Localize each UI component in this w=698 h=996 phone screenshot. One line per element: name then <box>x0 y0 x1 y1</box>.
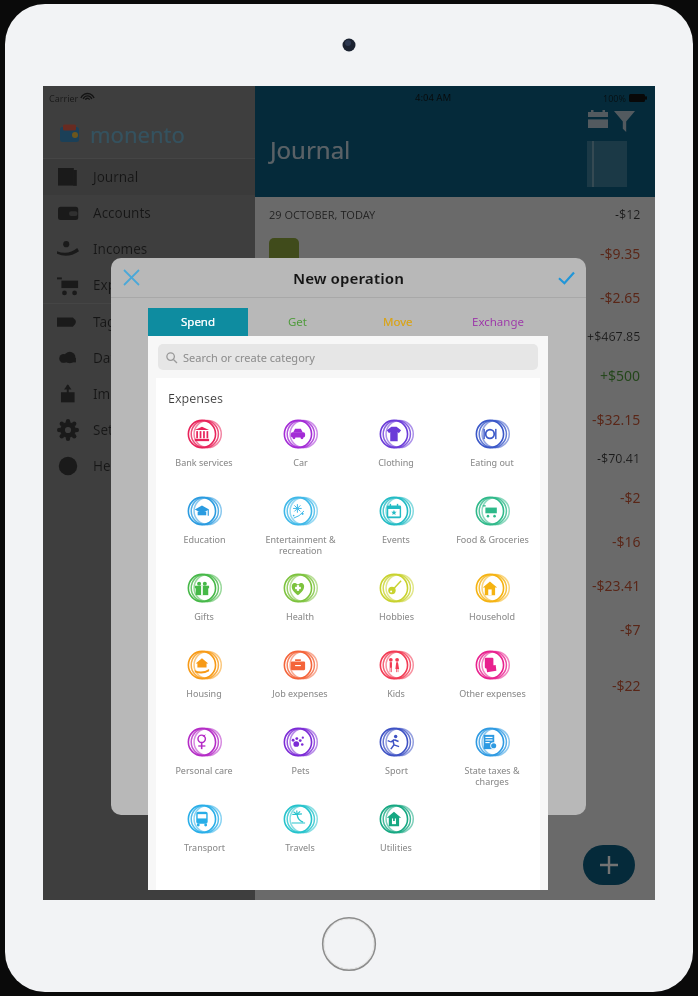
button[interactable]: Help <box>43 448 255 484</box>
staticText: Clothing <box>378 456 414 468</box>
button[interactable]: Journal <box>43 159 255 195</box>
staticText: -$12 <box>615 206 641 223</box>
staticText: monento <box>90 119 185 149</box>
button[interactable]: Household <box>444 565 540 642</box>
button[interactable]: Job expenses <box>252 642 348 719</box>
button[interactable]: -$2 <box>263 475 647 519</box>
button[interactable]: Confirm <box>546 258 586 297</box>
staticText: Expenses <box>168 390 224 407</box>
button[interactable]: Accounts <box>43 195 255 231</box>
staticText: -$2 <box>620 488 641 507</box>
staticText: Spend <box>181 314 216 330</box>
staticText: -$7 <box>620 620 641 639</box>
staticText: Household <box>469 610 515 622</box>
staticText: Move <box>383 314 413 330</box>
button[interactable]: Filter <box>614 111 635 132</box>
button[interactable]: Events <box>348 488 444 565</box>
button[interactable]: Close <box>111 258 151 297</box>
button[interactable]: Pets <box>252 719 348 796</box>
staticText: -$16 <box>612 532 641 551</box>
button[interactable]: -$2.65 <box>263 275 647 319</box>
button[interactable]: Search or create category <box>158 344 538 370</box>
button[interactable]: Sport <box>348 719 444 796</box>
staticText: -$22 <box>612 676 641 695</box>
button[interactable]: Eating out <box>444 411 540 488</box>
staticText: New operation <box>293 268 404 288</box>
button[interactable]: Hobbies <box>348 565 444 642</box>
staticText: Get <box>288 314 308 330</box>
staticText: Education <box>183 533 226 545</box>
button[interactable]: +$500 <box>263 353 647 397</box>
staticText: Search or create category <box>183 350 315 365</box>
staticText: Kids <box>387 687 405 699</box>
button[interactable]: -$16 <box>263 519 647 563</box>
button[interactable]: Exchange <box>448 308 548 336</box>
button[interactable]: Get <box>248 308 348 336</box>
staticText: Accounts <box>93 204 151 222</box>
button[interactable]: Other expenses <box>444 642 540 719</box>
button[interactable]: Entertainment & recreation <box>252 488 348 565</box>
button[interactable]: Education <box>156 488 252 565</box>
button[interactable]: Tags <box>43 304 255 340</box>
staticText: Health <box>286 610 314 622</box>
button[interactable]: Move <box>348 308 448 336</box>
button[interactable]: Incomes <box>43 231 255 267</box>
staticText: Help <box>93 457 123 475</box>
staticText: Personal care <box>175 764 233 776</box>
staticText: Expenses <box>93 276 153 294</box>
staticText: Entertainment & recreation <box>265 533 336 556</box>
staticText: Incomes <box>93 240 148 258</box>
button[interactable]: Gifts <box>156 565 252 642</box>
button[interactable]: -$23.41 <box>263 563 647 607</box>
staticText: -$23.41 <box>592 576 641 595</box>
button[interactable]: Food & Groceries <box>444 488 540 565</box>
staticText: Car <box>293 456 308 468</box>
button[interactable]: -$32.15 <box>263 397 647 441</box>
button[interactable]: Calendar <box>588 112 608 132</box>
button[interactable]: Settings <box>43 412 255 448</box>
button[interactable]: Personal care <box>156 719 252 796</box>
staticText: -$32.15 <box>592 410 641 429</box>
staticText: Transport <box>184 841 225 853</box>
staticText: Utilities <box>380 841 412 853</box>
staticText: Settings <box>93 421 145 439</box>
button[interactable]: State taxes & charges <box>444 719 540 796</box>
button[interactable]: Health <box>252 565 348 642</box>
staticText: Travels <box>285 841 315 853</box>
staticText: Other expenses <box>459 687 526 699</box>
staticText: 4:04 AM <box>415 91 452 104</box>
button[interactable]: Housing <box>156 642 252 719</box>
button[interactable]: Expenses <box>43 267 255 303</box>
button[interactable]: -$9.35 <box>263 231 647 275</box>
staticText: Food & Groceries <box>456 533 529 545</box>
button[interactable]: Transport <box>156 796 252 873</box>
staticText: Hobbies <box>379 610 414 622</box>
staticText: 29 OCTOBER, TODAY <box>269 207 376 222</box>
button[interactable]: Car <box>252 411 348 488</box>
staticText: Housing <box>186 687 222 699</box>
button[interactable]: Bank services <box>156 411 252 488</box>
staticText: +$500 <box>600 366 641 385</box>
button[interactable]: Kids <box>348 642 444 719</box>
staticText: Pets <box>291 764 310 776</box>
button[interactable]: -$7 <box>263 607 647 651</box>
button[interactable]: Data <box>43 340 255 376</box>
button[interactable]: Clothing <box>348 411 444 488</box>
staticText: Eating out <box>470 456 514 468</box>
staticText: Bank services <box>175 456 233 468</box>
staticText: Journal <box>93 168 139 186</box>
button[interactable]: Spend <box>148 308 248 336</box>
staticText: -$9.35 <box>600 244 641 263</box>
staticText: -$2.65 <box>600 288 641 307</box>
staticText: Job expenses <box>272 687 328 699</box>
button[interactable]: Import <box>43 376 255 412</box>
button[interactable]: Add operation <box>583 845 635 885</box>
staticText: Carrier <box>49 92 79 104</box>
staticText: -$70.41 <box>597 450 641 467</box>
staticText: Tags <box>93 313 122 331</box>
staticText: Data <box>93 349 123 367</box>
button[interactable]: Travels <box>252 796 348 873</box>
staticText: State taxes & charges <box>464 764 520 787</box>
button[interactable]: -$22 <box>263 663 647 707</box>
button[interactable]: Utilities <box>348 796 444 873</box>
